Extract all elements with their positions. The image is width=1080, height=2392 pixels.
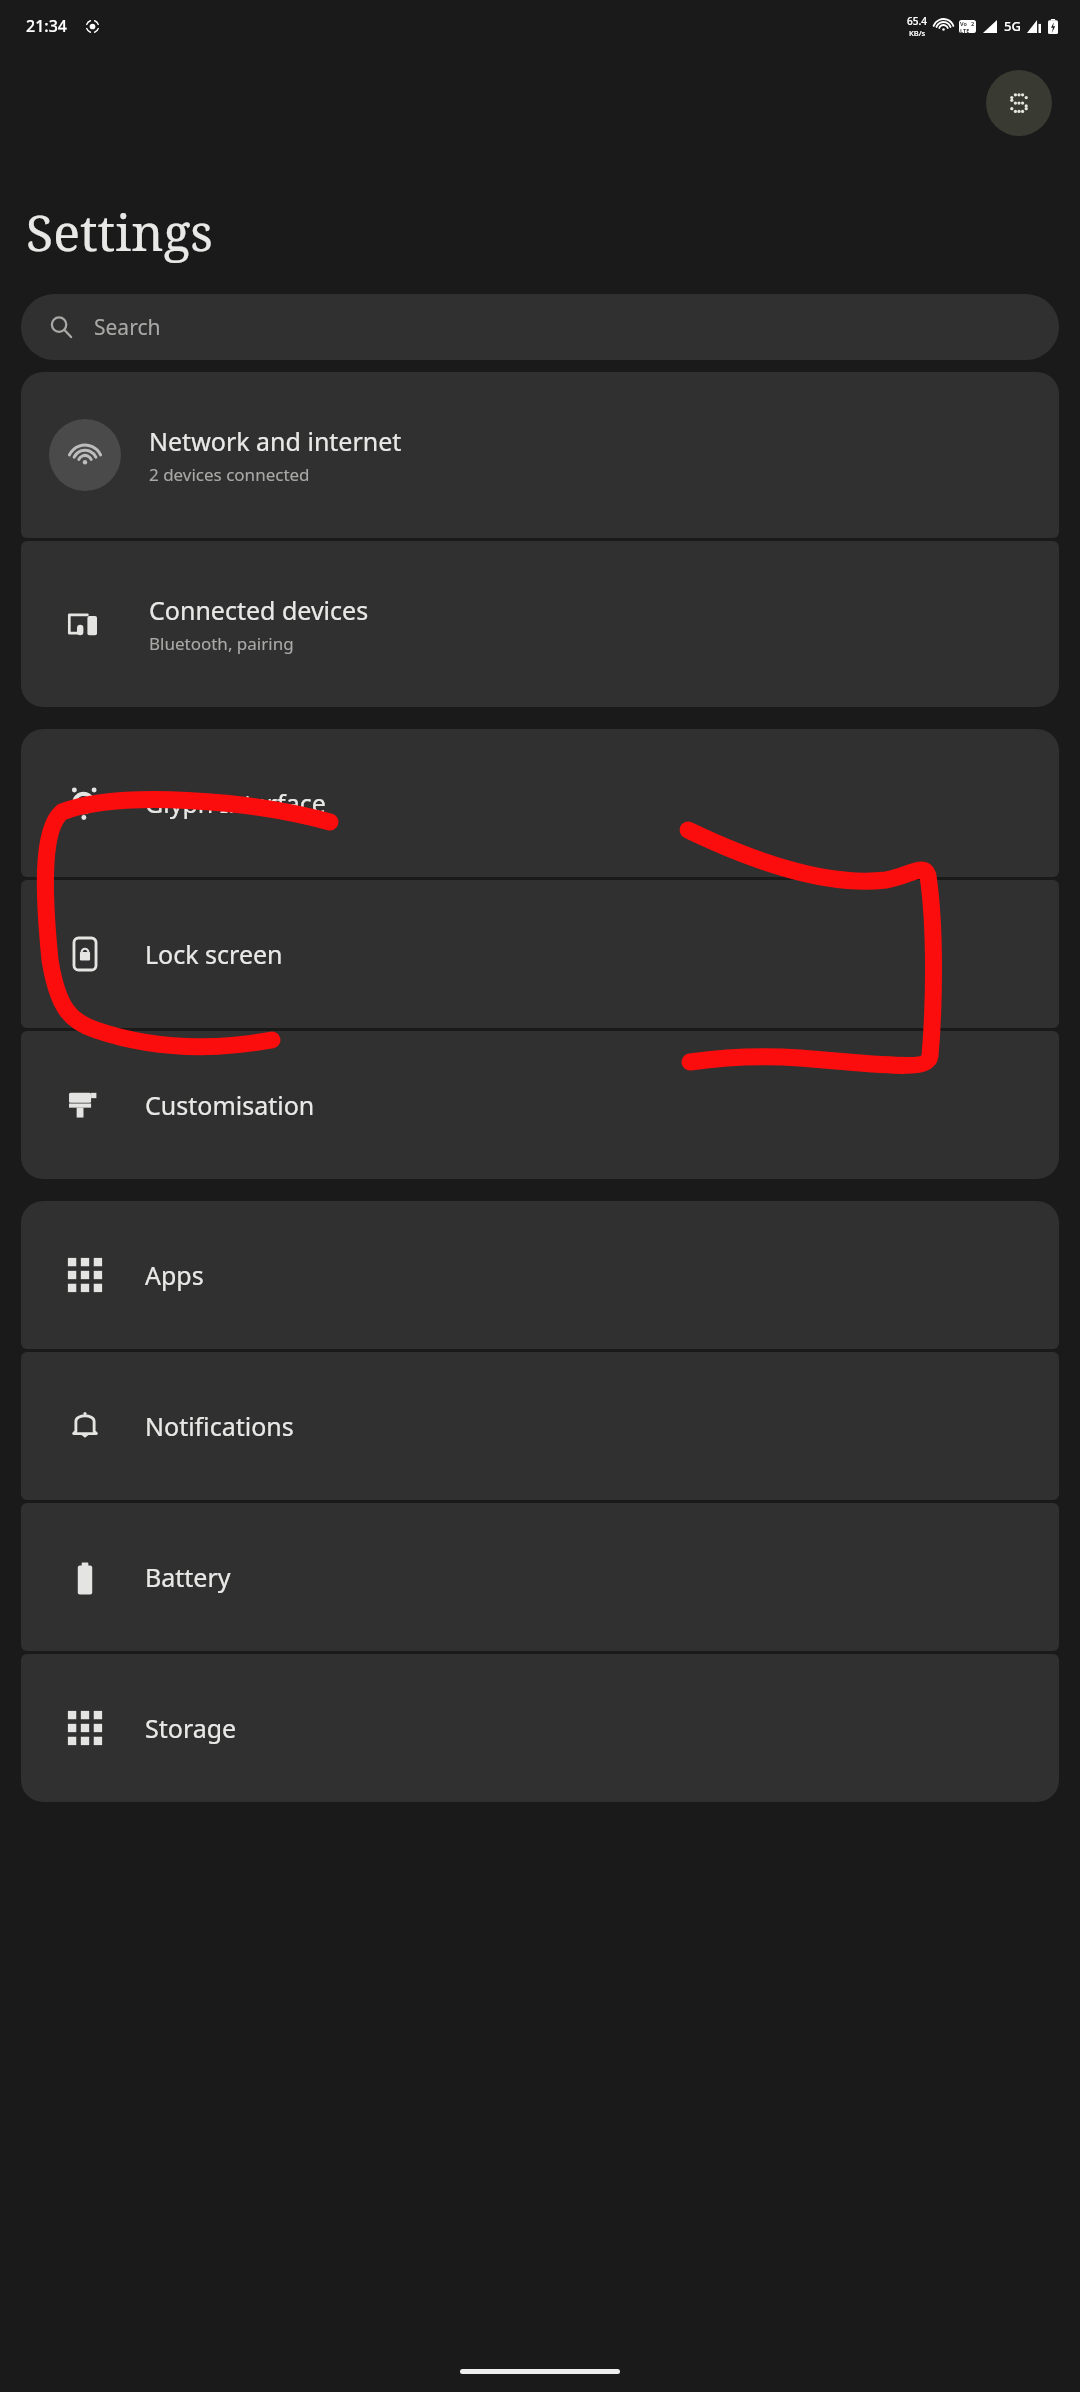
button[interactable]: Search xyxy=(21,294,1059,360)
button[interactable]: Account xyxy=(986,70,1052,136)
staticText: Settings xyxy=(26,198,213,266)
button[interactable]: Connected devices xyxy=(21,541,1059,707)
staticText: Network and internet xyxy=(149,424,402,458)
button[interactable]: Glyph Interface xyxy=(21,729,1059,877)
staticText: 65.4 xyxy=(907,14,927,28)
staticText: Storage xyxy=(145,1711,237,1745)
button[interactable]: Storage xyxy=(21,1654,1059,1802)
staticText: Notifications xyxy=(145,1409,294,1443)
staticText: Apps xyxy=(145,1258,204,1292)
button[interactable]: Network and internet xyxy=(21,372,1059,538)
button[interactable]: Customisation xyxy=(21,1031,1059,1179)
staticText: 21:34 xyxy=(26,15,67,37)
staticText: Customisation xyxy=(145,1088,315,1122)
staticText: Search xyxy=(94,313,161,342)
staticText: 2 xyxy=(971,20,975,27)
staticText: Lock screen xyxy=(145,937,283,971)
staticText: Vo xyxy=(960,20,967,27)
staticText: 5G xyxy=(1004,17,1021,35)
staticText: LTE xyxy=(960,27,975,33)
staticText: Battery xyxy=(145,1560,231,1594)
staticText: KB/s xyxy=(909,28,926,38)
button[interactable]: Apps xyxy=(21,1201,1059,1349)
button[interactable]: Notifications xyxy=(21,1352,1059,1500)
staticText: Bluetooth, pairing xyxy=(149,632,294,655)
button[interactable]: Lock screen xyxy=(21,880,1059,1028)
staticText: Glyph Interface xyxy=(145,786,326,820)
staticText: Connected devices xyxy=(149,593,369,627)
button[interactable]: Battery xyxy=(21,1503,1059,1651)
staticText: 2 devices connected xyxy=(149,463,310,486)
